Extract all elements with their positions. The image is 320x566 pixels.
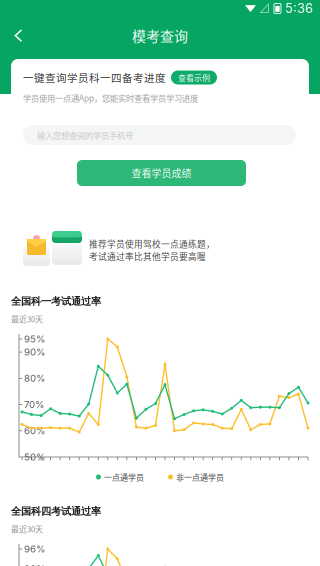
staticText: 查看示例 (178, 72, 210, 83)
staticText: 80% (24, 372, 45, 384)
staticText: 一点通学员 (104, 471, 144, 483)
staticText: 学员使用一点通App，您能实时查看学员学习进度 (23, 92, 198, 104)
staticText: 最近30天 (11, 523, 43, 535)
staticText: 输入您想查阅的学员手机号 (37, 129, 133, 141)
button[interactable]: 查看示例 (171, 70, 217, 84)
staticText: 95% (24, 333, 45, 345)
button[interactable]: 查看学员成绩 (77, 160, 246, 186)
staticText: 全国科一考试通过率 (11, 295, 101, 308)
staticText: 96% (24, 543, 45, 555)
staticText: 90% (24, 563, 45, 566)
staticText: 非一点通学员 (176, 471, 224, 483)
staticText: 模考查询 (132, 25, 188, 46)
staticText: 5:36 (285, 1, 313, 16)
staticText: 50% (24, 451, 45, 463)
staticText: 一键查询学员科一四备考进度 (23, 70, 166, 85)
staticText: 全国科四考试通过率 (11, 505, 101, 518)
staticText: 查看学员成绩 (131, 166, 191, 180)
staticText: 最近30天 (11, 313, 43, 325)
button[interactable]: 返回 (0, 21, 33, 50)
staticText: 70% (24, 399, 44, 410)
staticText: 推荐学员使用驾校一点通练题， 考试通过率比其他学员要高喔 (89, 237, 215, 263)
staticText: 60% (24, 425, 45, 437)
staticText: 90% (24, 346, 45, 358)
